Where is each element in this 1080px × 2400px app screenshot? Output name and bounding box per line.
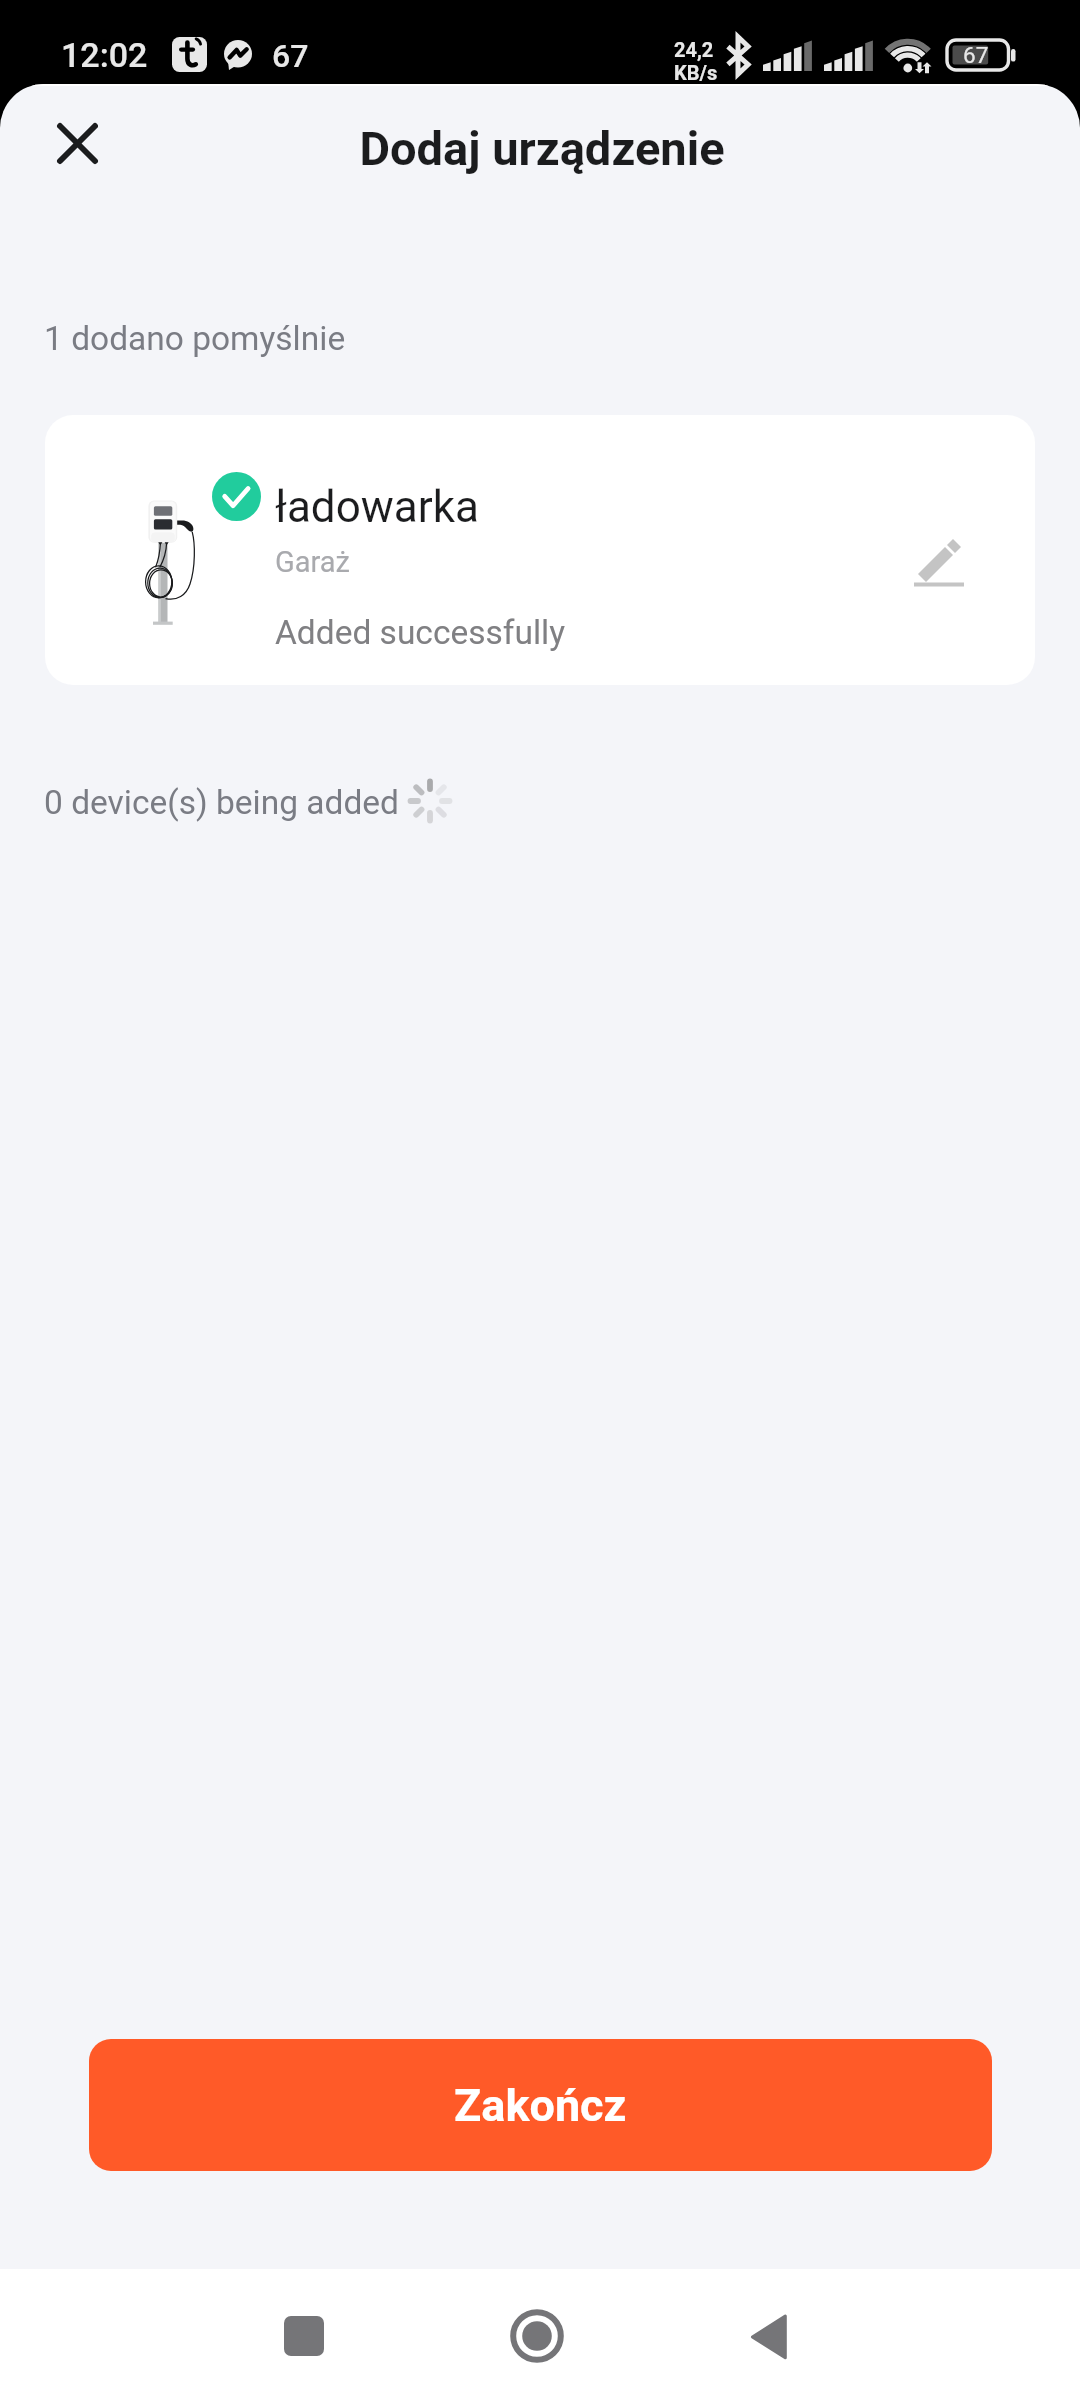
button[interactable]: Close <box>16 84 138 204</box>
button[interactable]: Back <box>709 2276 829 2396</box>
staticText: 67 <box>963 42 989 68</box>
staticText: Garaż <box>275 545 350 579</box>
button[interactable]: Home <box>477 2276 597 2396</box>
staticText: ładowarka <box>275 481 479 533</box>
staticText: 0 device(s) being added <box>44 783 399 822</box>
button[interactable]: Zakończ <box>89 2039 992 2171</box>
staticText: 12:02 <box>61 35 148 75</box>
staticText: Added successfully <box>275 613 566 652</box>
button[interactable]: Recent apps <box>244 2276 364 2396</box>
staticText: Zakończ <box>454 2079 627 2132</box>
staticText: 1 dodano pomyślnie <box>44 319 346 358</box>
staticText: Dodaj urządzenie <box>2 121 1080 176</box>
staticText: KB/s <box>674 61 718 84</box>
button[interactable]: Rename <box>878 501 999 622</box>
button[interactable]: ładowarka <box>45 415 1035 685</box>
staticText: 24,2 <box>674 38 714 61</box>
staticText: 67 <box>272 37 309 75</box>
